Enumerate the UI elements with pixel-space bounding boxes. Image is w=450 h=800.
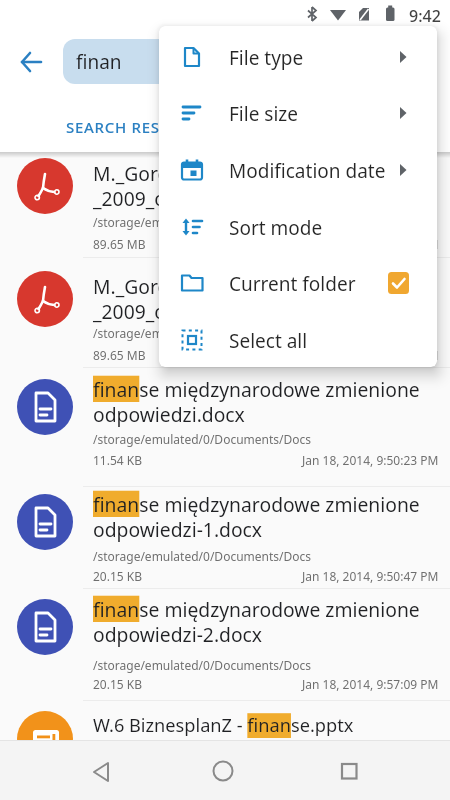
- staticText: SEARCH RESULTS: [66, 117, 198, 137]
- staticText: /storage/emulated/0/Documents: [93, 771, 280, 787]
- staticText: 89.65 MB: [93, 347, 146, 363]
- staticText: Select all: [229, 328, 308, 354]
- staticText: 89.65 MB: [93, 236, 146, 252]
- staticText: /storage/emulated/0/Documents/Docs: [93, 548, 312, 564]
- button[interactable]: M._Gorczyńska_Finanse_mi: [0, 152, 450, 258]
- staticText: Current folder: [229, 271, 356, 297]
- staticText: 11.54 KB: [93, 452, 143, 468]
- staticText: odpowiedzi-1.docx: [93, 516, 263, 542]
- button[interactable]: [85, 755, 117, 787]
- staticText: Jan 18, 2014, 9:50:23 PM: [302, 236, 439, 252]
- staticText: finan: [76, 49, 122, 75]
- staticText: 9:42: [409, 5, 441, 27]
- staticText: 20.15 KB: [93, 676, 143, 692]
- button[interactable]: File type: [159, 29, 437, 85]
- button[interactable]: finan: [63, 39, 388, 84]
- staticText: M._Gorczyńska_Finanse_mi: [93, 160, 338, 186]
- button[interactable]: W.6 BiznesplanZ - finanse.pptx: [0, 701, 450, 800]
- button[interactable]: finanse międzynarodowe zmienione: [0, 368, 450, 487]
- staticText: Sort mode: [229, 215, 323, 241]
- button[interactable]: Modification date: [159, 142, 437, 198]
- staticText: Modification date: [229, 158, 386, 184]
- button[interactable]: [333, 755, 365, 787]
- staticText: /storage/emulated/0/Documents: [93, 325, 280, 341]
- button[interactable]: Select all: [159, 312, 437, 367]
- button[interactable]: [207, 755, 239, 787]
- button[interactable]: finanse międzynarodowe zmienione: [0, 487, 450, 589]
- staticText: _2009_odpowiedzi-1.pdf: [93, 298, 311, 324]
- staticText: /storage/emulated/0/Documents: [93, 214, 280, 230]
- staticText: _2009_odpowiedzi.pdf: [93, 185, 294, 211]
- staticText: Jan 18, 2014, 9:57:09 PM: [302, 676, 439, 692]
- staticText: File size: [229, 101, 298, 127]
- button[interactable]: Current folder: [159, 255, 437, 311]
- staticText: 20.15 KB: [93, 568, 143, 584]
- button[interactable]: M._Gorczyńska_Finanse_mi: [0, 258, 450, 368]
- button[interactable]: Sort mode: [159, 199, 437, 255]
- staticText: odpowiedzi.docx: [93, 401, 245, 427]
- staticText: W.6 BiznesplanZ - finanse.pptx: [93, 713, 354, 738]
- staticText: M._Gorczyńska_Finanse_mi: [93, 273, 338, 299]
- staticText: finanse międzynarodowe zmienione: [93, 376, 420, 402]
- staticText: finanse międzynarodowe zmienione: [93, 596, 420, 622]
- staticText: odpowiedzi-2.docx: [93, 621, 263, 647]
- staticText: finanse międzynarodowe zmienione: [93, 491, 420, 517]
- staticText: /storage/emulated/0/Documents/Docs: [93, 431, 312, 447]
- button[interactable]: finanse międzynarodowe zmienione: [0, 589, 450, 701]
- button[interactable]: [16, 48, 46, 76]
- button[interactable]: File size: [159, 85, 437, 141]
- staticText: Jan 18, 2014, 9:50:47 PM: [302, 568, 439, 584]
- staticText: /storage/emulated/0/Documents/Docs: [93, 657, 312, 673]
- staticText: File type: [229, 45, 304, 71]
- staticText: Jan 18, 2014, 9:50:23 PM: [302, 452, 439, 468]
- staticText: Jan 18, 2014, 9:50:23 PM: [302, 347, 439, 363]
